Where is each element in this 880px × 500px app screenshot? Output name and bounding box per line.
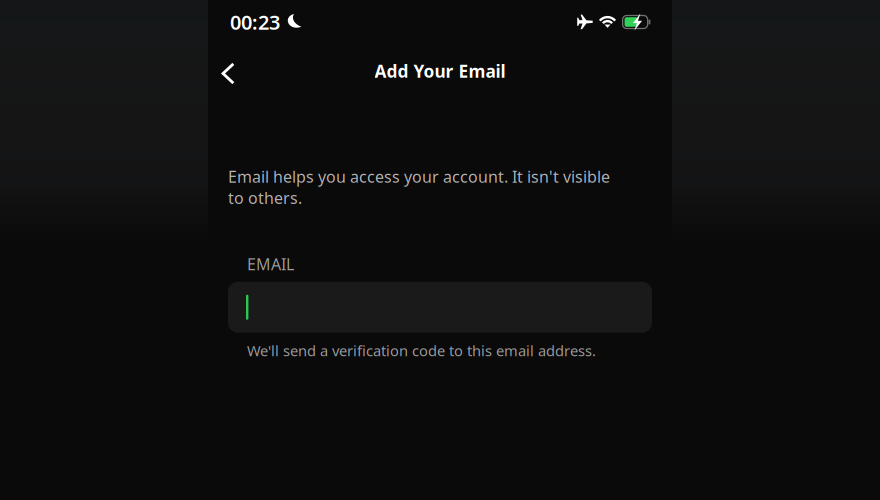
staticText: Email helps you access your account. It …	[228, 166, 610, 208]
button[interactable]: Email address	[228, 282, 652, 333]
staticText: 00:23	[230, 9, 280, 35]
staticText: We'll send a verification code to this e…	[247, 341, 596, 360]
button[interactable]: Back	[211, 47, 245, 94]
staticText: EMAIL	[247, 253, 294, 275]
staticText: Add Your Email	[374, 59, 505, 82]
